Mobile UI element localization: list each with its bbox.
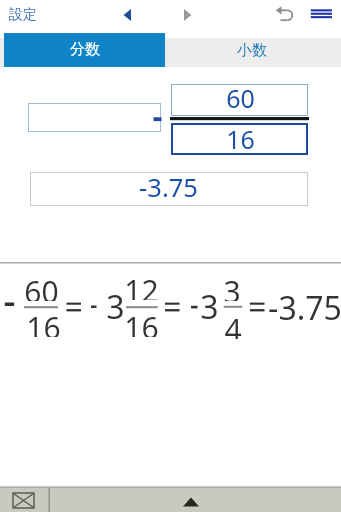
button[interactable]: 設定 bbox=[3, 3, 43, 27]
button[interactable] bbox=[110, 0, 142, 32]
button[interactable] bbox=[171, 123, 308, 155]
staticText: 小数 bbox=[237, 41, 267, 60]
staticText: 3 bbox=[106, 285, 125, 329]
staticText: 16 bbox=[124, 307, 159, 337]
button[interactable] bbox=[165, 38, 341, 67]
staticText: -3.75 bbox=[268, 286, 341, 320]
staticText: 16 bbox=[226, 122, 255, 152]
button[interactable] bbox=[4, 33, 165, 67]
staticText: 60 bbox=[24, 271, 59, 301]
button[interactable] bbox=[304, 0, 338, 32]
button[interactable] bbox=[268, 0, 300, 32]
staticText: 設定 bbox=[9, 6, 37, 24]
button[interactable] bbox=[28, 103, 161, 132]
staticText: 16 bbox=[26, 307, 61, 337]
button[interactable] bbox=[171, 84, 308, 116]
staticText: 3 bbox=[223, 271, 241, 301]
staticText: 分数 bbox=[70, 40, 100, 59]
button[interactable] bbox=[30, 172, 308, 206]
button[interactable] bbox=[0, 487, 49, 512]
staticText: -3.75 bbox=[139, 170, 198, 200]
staticText: 60 bbox=[226, 81, 255, 111]
button[interactable] bbox=[172, 0, 204, 32]
staticText: 12 bbox=[124, 270, 159, 300]
button[interactable] bbox=[49, 487, 341, 512]
staticText: 3 bbox=[200, 285, 219, 329]
staticText: 4 bbox=[224, 309, 242, 339]
